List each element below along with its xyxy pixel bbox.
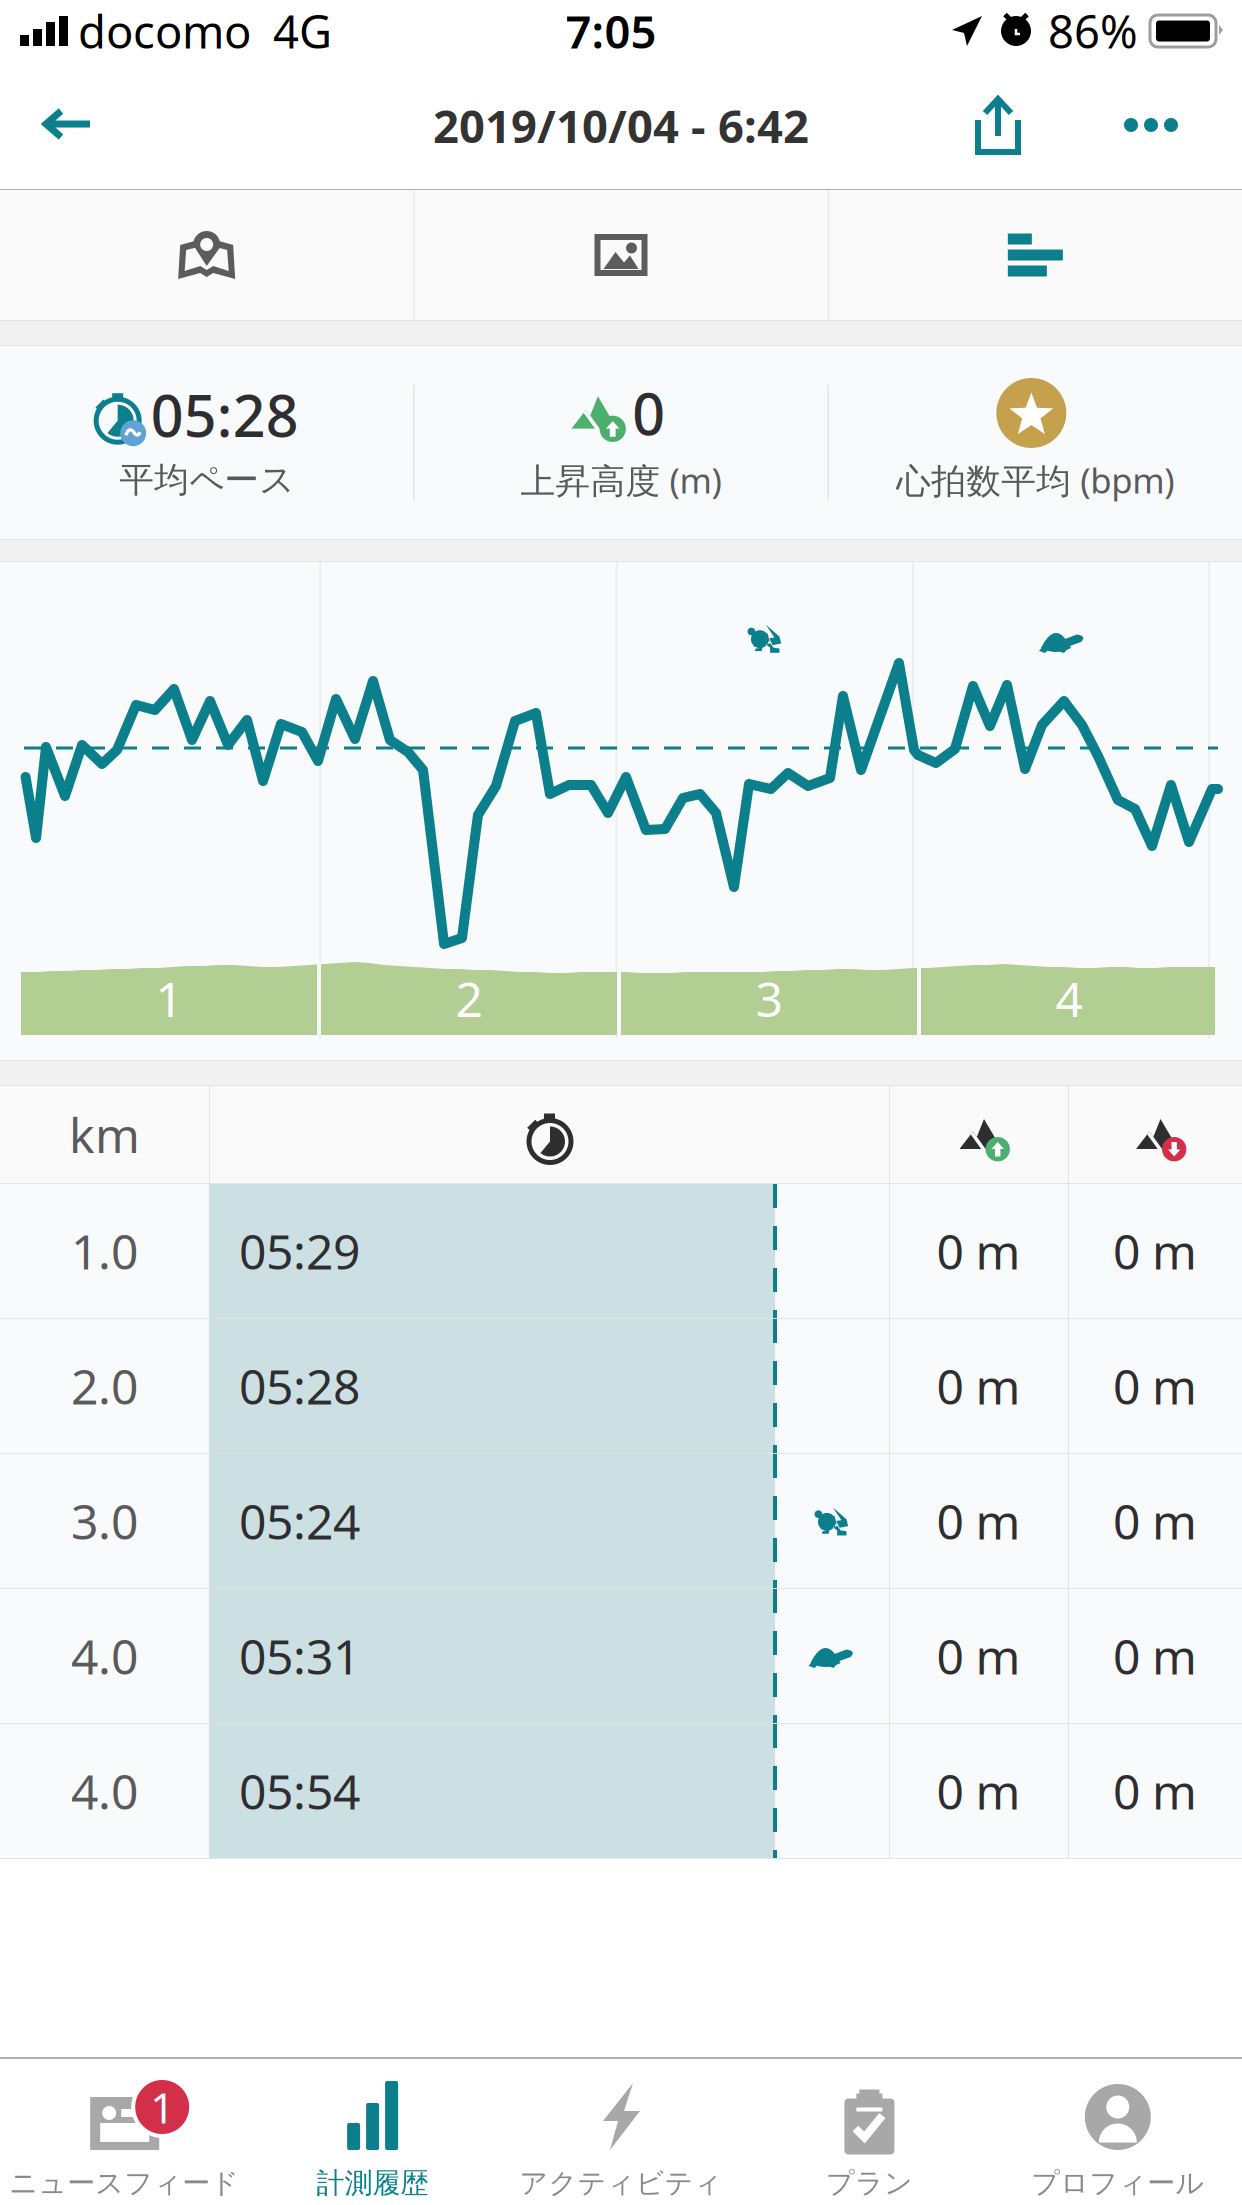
staticText: 0 m xyxy=(1113,1354,1197,1418)
button[interactable]: Back xyxy=(0,62,136,188)
button[interactable]: プラン xyxy=(745,2059,994,2205)
staticText: プロフィール xyxy=(1031,2166,1204,2200)
staticText: 2 xyxy=(455,967,482,1030)
staticText: 2019/10/04 - 6:42 xyxy=(433,95,809,156)
staticText: 0 m xyxy=(936,1624,1020,1688)
staticText: 1 xyxy=(155,967,182,1030)
button[interactable]: Splits xyxy=(829,190,1242,320)
staticText: プラン xyxy=(826,2166,913,2200)
button[interactable]: More xyxy=(1092,62,1210,188)
staticText: 05:29 xyxy=(239,1219,360,1283)
button[interactable]: アクティビティ xyxy=(497,2059,745,2205)
staticText: 4 xyxy=(1055,967,1082,1030)
staticText: 86% xyxy=(1048,1,1138,61)
staticText: 4.0 xyxy=(71,1624,138,1688)
staticText: 計測履歴 xyxy=(317,2166,429,2200)
staticText: ニュースフィード xyxy=(9,2166,239,2200)
staticText: 4G xyxy=(273,1,332,61)
staticText: 05:28 xyxy=(239,1354,360,1418)
staticText: 7:05 xyxy=(565,1,656,61)
button[interactable]: Share xyxy=(941,62,1055,188)
staticText: 05:54 xyxy=(239,1759,360,1823)
button[interactable]: プロフィール xyxy=(994,2059,1242,2205)
staticText: 0 m xyxy=(1113,1759,1197,1823)
staticText: 0 m xyxy=(1113,1219,1197,1283)
staticText: 3 xyxy=(755,967,782,1030)
staticText: 3.0 xyxy=(71,1489,138,1553)
staticText: 4.0 xyxy=(71,1759,138,1823)
staticText: km xyxy=(69,1103,140,1166)
staticText: 心拍数平均 (bpm) xyxy=(896,457,1174,503)
button[interactable]: 計測履歴 xyxy=(248,2059,497,2205)
staticText: 0 m xyxy=(936,1354,1020,1418)
staticText: 0 m xyxy=(936,1759,1020,1823)
staticText: 0 m xyxy=(1113,1624,1197,1688)
staticText: 05:24 xyxy=(239,1489,360,1553)
button[interactable]: Photos xyxy=(414,190,828,320)
staticText: docomo xyxy=(78,1,251,61)
staticText: 05:31 xyxy=(239,1624,360,1688)
staticText: 1 xyxy=(150,2079,174,2135)
button[interactable]: 1 xyxy=(0,2059,248,2205)
staticText: アクティビティ xyxy=(519,2166,722,2200)
button[interactable]: Map xyxy=(0,190,413,320)
staticText: 05:28 xyxy=(151,377,299,453)
staticText: 0 m xyxy=(1113,1489,1197,1553)
staticText: 0 m xyxy=(936,1219,1020,1283)
staticText: 平均ペース xyxy=(119,459,294,501)
staticText: 上昇高度 (m) xyxy=(520,457,721,503)
staticText: 0 m xyxy=(936,1489,1020,1553)
staticText: 1.0 xyxy=(71,1219,138,1283)
staticText: 2.0 xyxy=(71,1354,138,1418)
staticText: 0 xyxy=(632,375,665,451)
